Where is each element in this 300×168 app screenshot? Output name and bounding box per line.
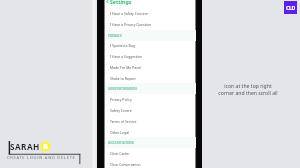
staticText: ACCOUNT ACTIONS bbox=[108, 141, 134, 145]
staticText: Privacy Policy bbox=[110, 97, 132, 102]
button[interactable]: Safety Centre bbox=[105, 105, 196, 116]
staticText: I Have a Privacy Question bbox=[110, 22, 152, 27]
staticText: Clear Conversation bbox=[110, 162, 141, 167]
button[interactable]: Back bbox=[105, 0, 196, 6]
staticText: MORE INFORMATION bbox=[108, 87, 137, 91]
other: Back bbox=[105, 0, 110, 4]
staticText: Settings bbox=[110, 0, 132, 5]
staticText: CREATE LOGIN AND DELETE bbox=[7, 155, 76, 160]
staticText: I Have a Safety Concern bbox=[110, 11, 149, 16]
button[interactable]: I Have a Safety Concern bbox=[105, 8, 196, 19]
staticText: I Spotted a Bug bbox=[110, 43, 135, 48]
button[interactable]: I Spotted a Bug bbox=[105, 40, 196, 51]
staticText: icon at the top right corner and then sc… bbox=[218, 83, 278, 96]
button[interactable]: CLD logo bbox=[284, 1, 297, 14]
button[interactable]: Clear Cache bbox=[105, 148, 196, 159]
staticText: FEEDBACK bbox=[108, 34, 122, 38]
staticText: CLD bbox=[286, 4, 296, 11]
staticText: Made For Me Panel bbox=[110, 65, 142, 70]
button[interactable]: Other Legal bbox=[105, 127, 196, 138]
staticText: Shake to Report bbox=[110, 76, 136, 81]
button[interactable]: Privacy Policy bbox=[105, 94, 196, 105]
staticText: Safety Centre bbox=[110, 108, 132, 113]
staticText: Terms of Service bbox=[110, 119, 137, 124]
button[interactable]: I Have a Suggestion bbox=[105, 51, 196, 62]
button[interactable]: Made For Me Panel bbox=[105, 62, 196, 73]
button[interactable]: Terms of Service bbox=[105, 116, 196, 127]
staticText: Other Legal bbox=[110, 130, 129, 135]
button[interactable]: Clear Conversation bbox=[105, 159, 196, 168]
button[interactable]: Shake to Report bbox=[105, 73, 196, 84]
staticText: Clear Cache bbox=[110, 151, 130, 156]
button[interactable]: I Have a Privacy Question bbox=[105, 19, 196, 30]
staticText: SARAH bbox=[10, 141, 40, 152]
staticText: I Have a Suggestion bbox=[110, 54, 143, 59]
